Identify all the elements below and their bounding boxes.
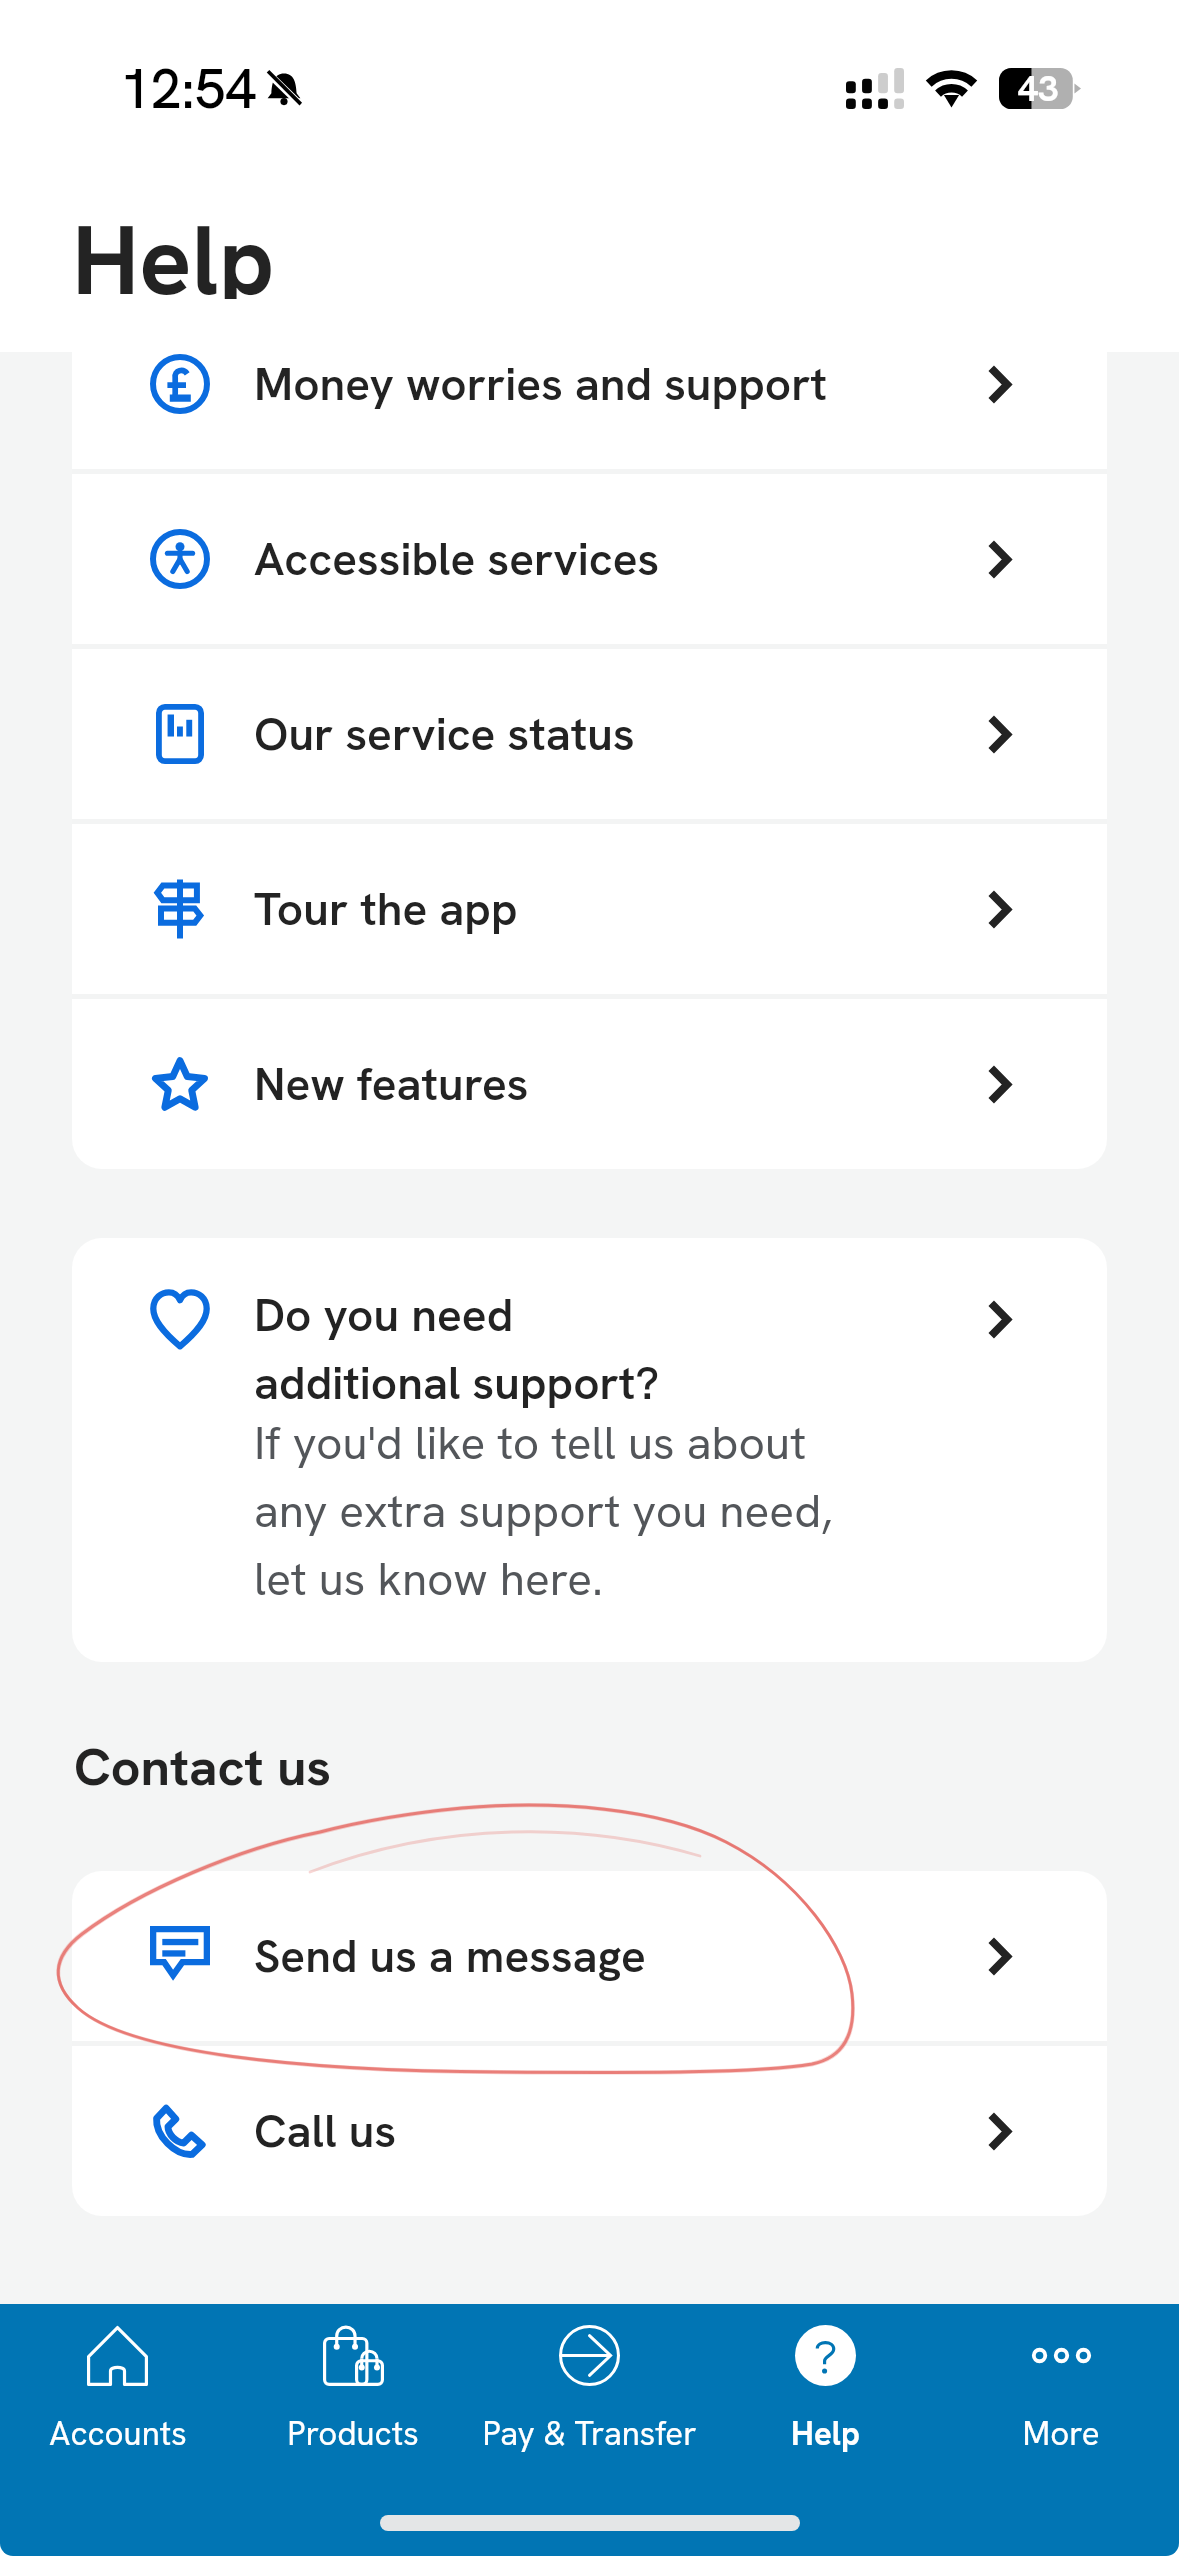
button[interactable]: Pay and Transfer: [471, 2325, 707, 2455]
staticText: New features: [254, 1054, 985, 1114]
button[interactable]: Accounts: [0, 2325, 235, 2455]
staticText: Call us: [254, 2101, 985, 2161]
staticText: Contact us: [74, 1733, 332, 1801]
staticText: 12:54: [120, 53, 257, 125]
staticText: Pay & Transfer: [482, 2412, 697, 2455]
staticText: Tour the app: [254, 879, 985, 939]
button[interactable]: Money worries and support: [72, 299, 1107, 469]
staticText: Do you need additional support?: [254, 1285, 660, 1413]
button[interactable]: More: [943, 2325, 1179, 2455]
staticText: Money worries and support: [254, 354, 985, 414]
staticText: Accessible services: [254, 529, 985, 589]
button[interactable]: New features: [72, 999, 1107, 1169]
staticText: Help: [791, 2412, 860, 2455]
button[interactable]: Products: [235, 2325, 471, 2455]
button[interactable]: Send us a message: [72, 1871, 1107, 2041]
button[interactable]: Accessible services: [72, 474, 1107, 644]
button[interactable]: Tour the app: [72, 824, 1107, 994]
staticText: 43: [1018, 65, 1059, 112]
staticText: If you'd like to tell us about any extra…: [254, 1413, 833, 1609]
staticText: Send us a message: [254, 1926, 985, 1986]
button[interactable]: Do you need additional support?: [72, 1238, 1107, 1662]
staticText: Products: [287, 2412, 419, 2455]
button[interactable]: Help: [707, 2325, 943, 2455]
staticText: Accounts: [49, 2412, 187, 2455]
staticText: Our service status: [254, 704, 985, 764]
button[interactable]: Our service status: [72, 649, 1107, 819]
button[interactable]: Call us: [72, 2046, 1107, 2216]
staticText: Help: [72, 197, 275, 323]
staticText: More: [1022, 2412, 1100, 2455]
